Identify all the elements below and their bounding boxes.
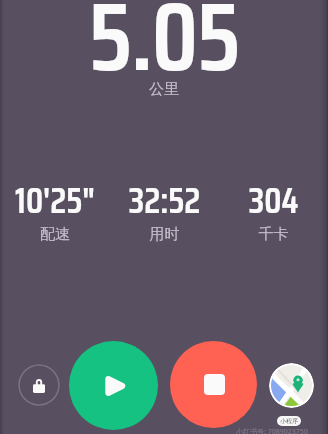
- staticText: 304: [219, 172, 328, 229]
- staticText: 小红书号: 7089023750: [236, 427, 308, 434]
- staticText: 用时: [110, 225, 219, 244]
- button[interactable]: Map: [269, 363, 314, 408]
- staticText: 公里: [0, 80, 328, 99]
- staticText: 32:52: [110, 172, 219, 229]
- staticText: 小程序: [280, 417, 298, 425]
- staticText: 千卡: [219, 225, 328, 244]
- button[interactable]: Stop: [170, 341, 257, 428]
- staticText: 10'25": [0, 172, 110, 229]
- staticText: 5.05: [0, 0, 328, 113]
- button[interactable]: Start: [69, 341, 158, 430]
- staticText: 配速: [0, 225, 110, 244]
- button[interactable]: Lock: [18, 364, 60, 406]
